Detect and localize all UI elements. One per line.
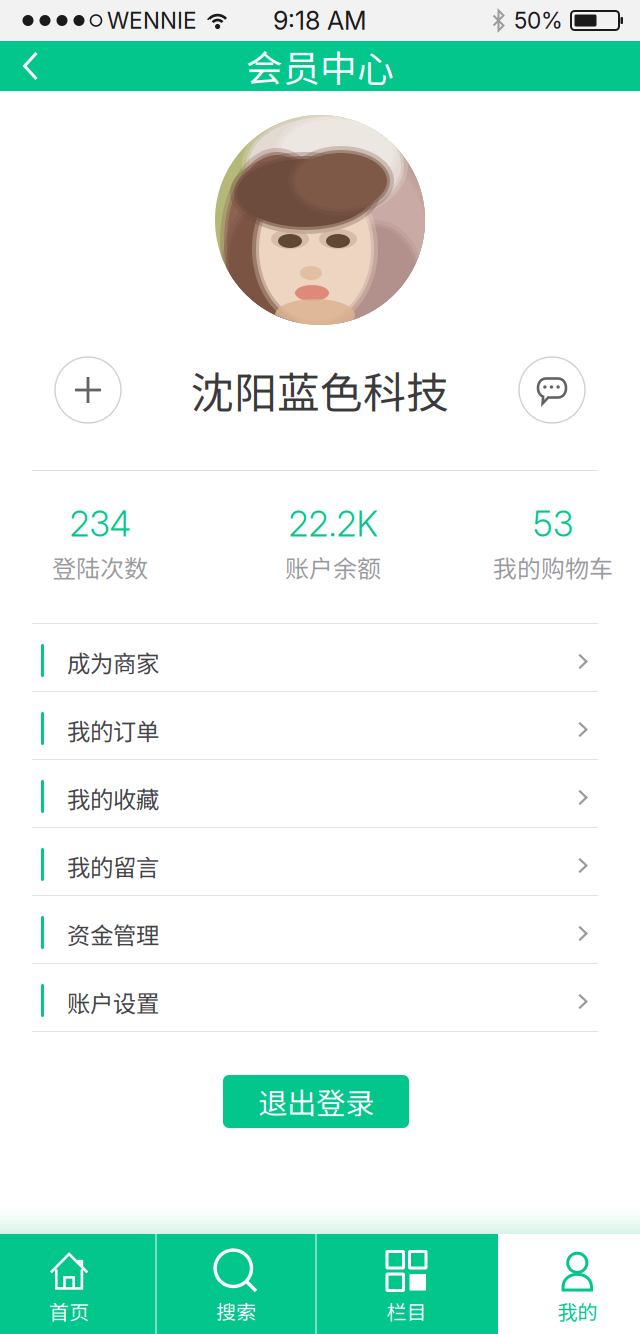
staticText: 沈阳蓝色科技 bbox=[191, 359, 449, 421]
staticText: 50% bbox=[514, 7, 563, 34]
staticText: 9:18 AM bbox=[273, 5, 367, 36]
staticText: 234 bbox=[69, 503, 130, 545]
staticText: 我的收藏 bbox=[67, 781, 159, 815]
button[interactable]: 53 bbox=[466, 471, 640, 623]
button[interactable]: 我的收藏 bbox=[0, 760, 640, 828]
staticText: 我的 bbox=[557, 1296, 597, 1325]
staticText: 我的留言 bbox=[67, 849, 159, 883]
button[interactable]: Add friend bbox=[55, 357, 121, 423]
staticText: 会员中心 bbox=[246, 39, 394, 93]
staticText: WENNIE bbox=[107, 7, 197, 34]
staticText: 资金管理 bbox=[67, 917, 159, 951]
button[interactable]: 退出登录 bbox=[223, 1075, 409, 1128]
staticText: 搜索 bbox=[216, 1296, 256, 1325]
button[interactable]: 我的留言 bbox=[0, 828, 640, 896]
staticText: 栏目 bbox=[386, 1296, 426, 1325]
staticText: 我的订单 bbox=[67, 713, 159, 747]
staticText: 53 bbox=[533, 503, 573, 545]
button[interactable]: 我的订单 bbox=[0, 692, 640, 760]
button[interactable]: 234 bbox=[0, 471, 200, 623]
staticText: 我的购物车 bbox=[493, 550, 613, 584]
button[interactable]: Back bbox=[0, 41, 67, 91]
staticText: 22.2K bbox=[288, 503, 377, 545]
button[interactable]: 栏目 bbox=[317, 1234, 498, 1334]
button[interactable]: 成为商家 bbox=[0, 624, 640, 692]
staticText: 账户设置 bbox=[67, 985, 159, 1019]
staticText: 登陆次数 bbox=[52, 550, 148, 584]
button[interactable]: 首页 bbox=[0, 1234, 155, 1334]
button[interactable]: 账户设置 bbox=[0, 964, 640, 1032]
button[interactable]: 搜索 bbox=[157, 1234, 315, 1334]
button[interactable]: 资金管理 bbox=[0, 896, 640, 964]
button[interactable]: Messages bbox=[519, 357, 585, 423]
staticText: 首页 bbox=[49, 1296, 89, 1325]
staticText: 账户余额 bbox=[285, 550, 381, 584]
staticText: 成为商家 bbox=[67, 645, 159, 679]
button[interactable]: 22.2K bbox=[200, 471, 466, 623]
staticText: 退出登录 bbox=[258, 1080, 374, 1123]
button[interactable]: 我的 bbox=[498, 1234, 640, 1334]
